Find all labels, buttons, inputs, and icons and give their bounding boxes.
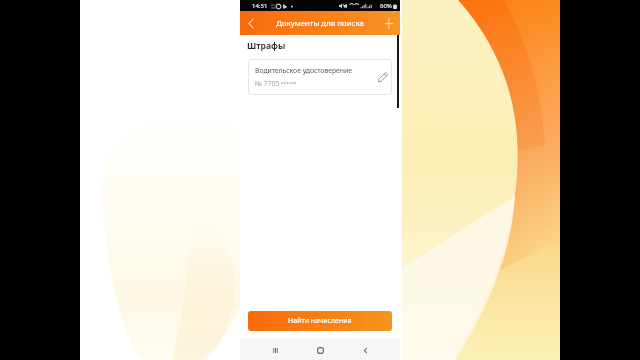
button[interactable]: Recent apps xyxy=(265,340,285,360)
staticText: № 7705 •••••• xyxy=(255,79,297,88)
staticText: Документы для поиска xyxy=(276,18,364,29)
button[interactable]: Home xyxy=(310,340,330,360)
button[interactable]: Водительское удостоверение xyxy=(248,59,392,95)
staticText: 60% xyxy=(380,2,392,10)
button[interactable]: Back xyxy=(240,12,262,34)
staticText: 14:51 xyxy=(252,2,268,10)
staticText: Водительское удостоверение xyxy=(255,66,352,75)
staticText: Найти начисления xyxy=(288,316,352,326)
staticText: Штрафы xyxy=(247,40,286,52)
button[interactable]: Add document xyxy=(378,12,400,34)
button[interactable]: Найти начисления xyxy=(248,311,392,331)
button[interactable]: Back xyxy=(355,340,375,360)
button[interactable]: Edit xyxy=(374,68,392,86)
